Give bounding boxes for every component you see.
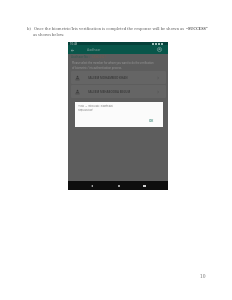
button[interactable]: Back bbox=[69, 47, 75, 53]
staticText: SALEEM MEHABOOBA BEGUM bbox=[88, 90, 131, 94]
staticText: 10 bbox=[200, 273, 206, 280]
staticText: XXXX 4321 bbox=[92, 55, 107, 59]
staticText: of biometric / iris authentication proce… bbox=[72, 66, 122, 70]
staticText: “SUCCESS” bbox=[186, 26, 208, 31]
staticText: as shown below. bbox=[33, 32, 65, 37]
button[interactable]: SALEEM MOHAMMED KHAN bbox=[71, 71, 166, 84]
staticText: Aadhaar No : bbox=[71, 55, 90, 59]
staticText: OK bbox=[149, 119, 154, 123]
button[interactable]: Recent apps bbox=[141, 182, 148, 189]
staticText: Please select the member for whom you wa… bbox=[72, 61, 154, 65]
staticText: ಇದು – ಮಜುದು ಸಂದೇಶದ bbox=[78, 103, 113, 108]
button[interactable]: Back bbox=[88, 182, 95, 189]
button[interactable]: SALEEM MEHABOOBA BEGUM bbox=[71, 85, 166, 98]
staticText: Once the biometric/Iris verification is … bbox=[34, 26, 186, 31]
button[interactable]: OK bbox=[147, 118, 156, 124]
staticText: 10:48 bbox=[70, 42, 78, 45]
staticText: ಸಫಲವಾಗಿದೆ bbox=[78, 108, 93, 112]
staticText: Aadhaar bbox=[87, 47, 101, 52]
button[interactable]: Account bbox=[156, 46, 163, 53]
staticText: SALEEM MOHAMMED KHAN bbox=[88, 76, 128, 80]
staticText: b) bbox=[27, 26, 31, 31]
button[interactable]: Home bbox=[115, 182, 122, 189]
